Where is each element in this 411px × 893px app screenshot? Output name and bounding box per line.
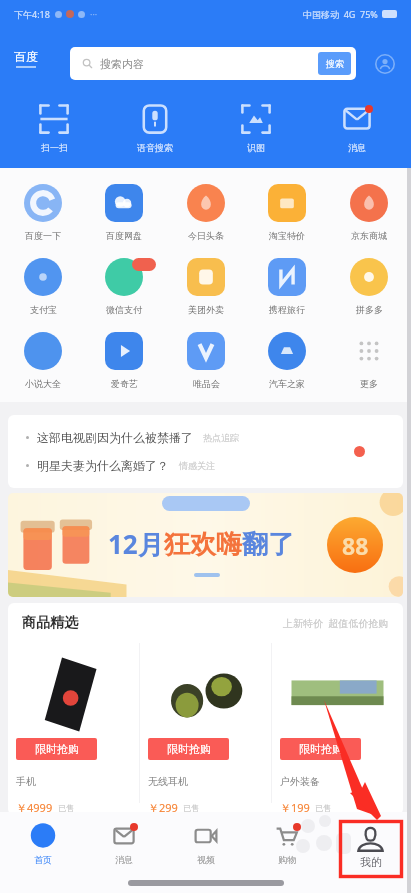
- staticText: 携程旅行: [269, 304, 305, 315]
- staticText: 商品精选: [22, 614, 78, 632]
- staticText: 搜索内容: [100, 57, 144, 71]
- button[interactable]: 百度网盘: [85, 184, 163, 241]
- staticText: 扫一扫: [41, 142, 68, 153]
- button[interactable]: 这部电视剧因为什么被禁播了: [8, 415, 403, 488]
- button[interactable]: 语音搜索: [108, 96, 202, 158]
- button[interactable]: 支付宝: [4, 258, 82, 315]
- staticText: 拼多多: [356, 304, 383, 315]
- staticText: 我的: [360, 855, 382, 869]
- staticText: ￥299: [148, 800, 178, 815]
- staticText: 限时抢购: [35, 742, 79, 756]
- staticText: 上新特价 超值低价抢购: [283, 616, 389, 630]
- staticText: 美团外卖: [188, 304, 224, 315]
- staticText: 这部电视剧因为什么被禁播了: [37, 430, 193, 445]
- button[interactable]: 唯品会: [167, 332, 245, 389]
- button[interactable]: 限时抢购: [8, 643, 139, 815]
- button[interactable]: 消息: [85, 812, 163, 865]
- button[interactable]: 识图: [209, 96, 303, 158]
- button[interactable]: 搜索内容: [70, 47, 356, 80]
- button[interactable]: 首页: [4, 812, 82, 865]
- staticText: 已售: [183, 803, 199, 813]
- staticText: 语音搜索: [137, 142, 173, 153]
- staticText: ￥199: [280, 800, 310, 815]
- button[interactable]: [330, 812, 408, 854]
- button[interactable]: 拼多多: [330, 258, 408, 315]
- staticText: 百度: [14, 49, 38, 64]
- staticText: 12月: [108, 526, 164, 562]
- staticText: 百度一下: [25, 230, 61, 241]
- button[interactable]: Account: [371, 50, 398, 77]
- staticText: 更多: [360, 378, 378, 389]
- button[interactable]: 限时抢购: [140, 643, 271, 815]
- staticText: 中国移动 4G 75%: [303, 8, 378, 20]
- staticText: 搜索: [326, 58, 344, 69]
- staticText: 汽车之家: [269, 378, 305, 389]
- button[interactable]: 京东商城: [330, 184, 408, 241]
- staticText: 爱奇艺: [111, 378, 138, 389]
- staticText: 百度网盘: [106, 230, 142, 241]
- staticText: ···: [90, 8, 98, 20]
- button[interactable]: 12月: [8, 493, 403, 597]
- button[interactable]: 百度: [14, 49, 38, 68]
- staticText: 无线耳机: [148, 775, 188, 788]
- staticText: 唯品会: [193, 378, 220, 389]
- button[interactable]: 购物: [248, 812, 326, 865]
- button[interactable]: 消息: [310, 96, 404, 158]
- staticText: 首页: [34, 854, 52, 865]
- staticText: 淘宝特价: [269, 230, 305, 241]
- staticText: 视频: [197, 854, 215, 865]
- staticText: 下午4:18: [14, 8, 50, 20]
- staticText: 限时抢购: [167, 742, 211, 756]
- button[interactable]: 小说大全: [4, 332, 82, 389]
- button[interactable]: 今日头条: [167, 184, 245, 241]
- button[interactable]: 爱奇艺: [85, 332, 163, 389]
- staticText: 限时抢购: [299, 742, 343, 756]
- button[interactable]: 扫一扫: [7, 96, 101, 158]
- button[interactable]: Search: [318, 52, 351, 75]
- staticText: 明星夫妻为什么离婚了？: [37, 458, 169, 473]
- staticText: 支付宝: [30, 304, 57, 315]
- button[interactable]: 视频: [167, 812, 245, 865]
- staticText: 手机: [16, 775, 36, 788]
- button[interactable]: 更多: [330, 332, 408, 389]
- button[interactable]: 百度一下: [4, 184, 82, 241]
- button[interactable]: 限时抢购: [272, 643, 403, 815]
- staticText: 热点追踪: [203, 432, 239, 443]
- staticText: 已售: [315, 803, 331, 813]
- button[interactable]: 微信支付: [85, 258, 163, 315]
- staticText: ￥4999: [16, 800, 53, 815]
- staticText: 88: [342, 530, 369, 561]
- staticText: 情感关注: [179, 460, 215, 471]
- staticText: 户外装备: [280, 775, 320, 788]
- staticText: 识图: [247, 142, 265, 153]
- button[interactable]: 美团外卖: [167, 258, 245, 315]
- staticText: 京东商城: [351, 230, 387, 241]
- staticText: 消息: [348, 142, 366, 153]
- staticText: 狂欢嗨: [164, 528, 242, 561]
- staticText: 消息: [115, 854, 133, 865]
- staticText: 翻了: [242, 528, 294, 561]
- staticText: 微信支付: [106, 304, 142, 315]
- staticText: 今日头条: [188, 230, 224, 241]
- button[interactable]: 淘宝特价: [248, 184, 326, 241]
- staticText: 购物: [278, 854, 296, 865]
- button[interactable]: 汽车之家: [248, 332, 326, 389]
- staticText: 已售: [58, 803, 74, 813]
- staticText: 小说大全: [25, 378, 61, 389]
- button[interactable]: 携程旅行: [248, 258, 326, 315]
